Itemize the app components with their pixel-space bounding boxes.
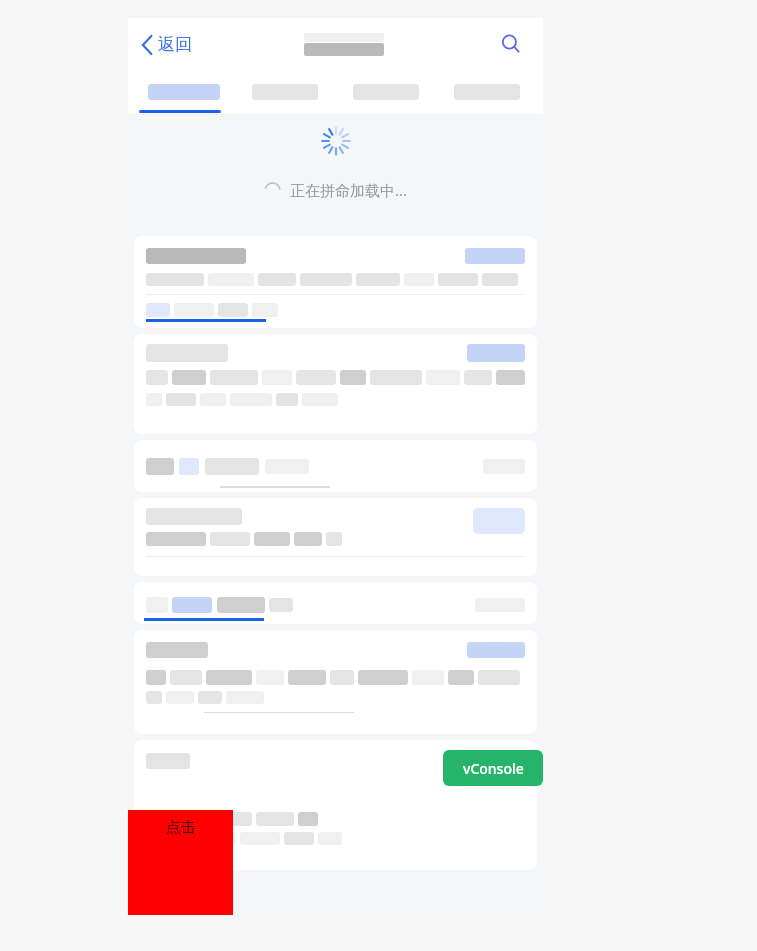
button[interactable] [335,70,436,114]
button[interactable] [134,440,537,492]
staticText: 正在拼命加载中... [290,180,408,200]
staticText: vConsole [463,759,524,778]
button[interactable]: Action [473,508,525,534]
button[interactable]: vConsole [443,750,543,786]
button[interactable] [134,740,537,870]
button[interactable] [134,236,537,328]
staticText: 点击 [166,818,196,837]
button[interactable] [436,70,537,114]
button[interactable] [134,630,537,734]
button[interactable]: 点击 [128,810,233,915]
button[interactable] [234,70,335,114]
button[interactable]: Search [495,28,527,60]
button[interactable]: Action [134,498,537,576]
button[interactable]: 返回 [142,34,192,55]
button[interactable] [134,582,537,624]
button[interactable] [134,70,234,114]
staticText: 返回 [158,34,192,55]
button[interactable] [134,334,537,434]
